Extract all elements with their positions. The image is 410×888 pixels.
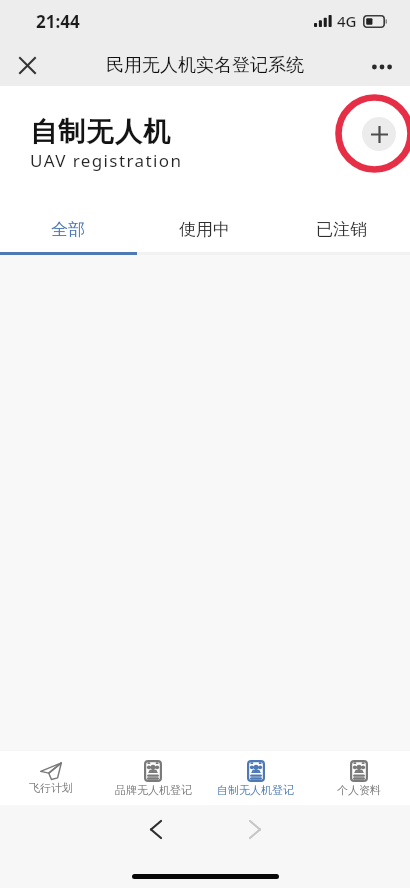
button[interactable]: 使用中: [136, 200, 273, 252]
button[interactable]: 品牌无人机登记: [102, 752, 204, 806]
staticText: 自制无人机登记: [217, 783, 294, 797]
staticText: UAV registration: [30, 149, 183, 172]
button[interactable]: 个人资料: [307, 752, 410, 806]
staticText: 个人资料: [337, 783, 381, 797]
staticText: 21:44: [36, 10, 80, 33]
staticText: 品牌无人机登记: [115, 783, 192, 797]
button[interactable]: Back: [130, 803, 182, 855]
staticText: 飞行计划: [29, 781, 73, 795]
staticText: 自制无人机: [30, 115, 172, 149]
button[interactable]: 自制无人机登记: [204, 752, 307, 806]
button[interactable]: 全部: [0, 200, 136, 252]
staticText: 全部: [51, 219, 85, 240]
button[interactable]: 已注销: [273, 200, 410, 252]
button[interactable]: Add: [362, 117, 396, 151]
button[interactable]: Close: [6, 44, 48, 86]
button[interactable]: More options: [361, 44, 403, 86]
staticText: 民用无人机实名登记系统: [106, 54, 304, 77]
staticText: 使用中: [179, 219, 230, 240]
button[interactable]: 飞行计划: [0, 752, 102, 806]
button[interactable]: Forward: [229, 803, 281, 855]
staticText: 已注销: [316, 219, 367, 240]
staticText: 4G: [337, 11, 357, 31]
